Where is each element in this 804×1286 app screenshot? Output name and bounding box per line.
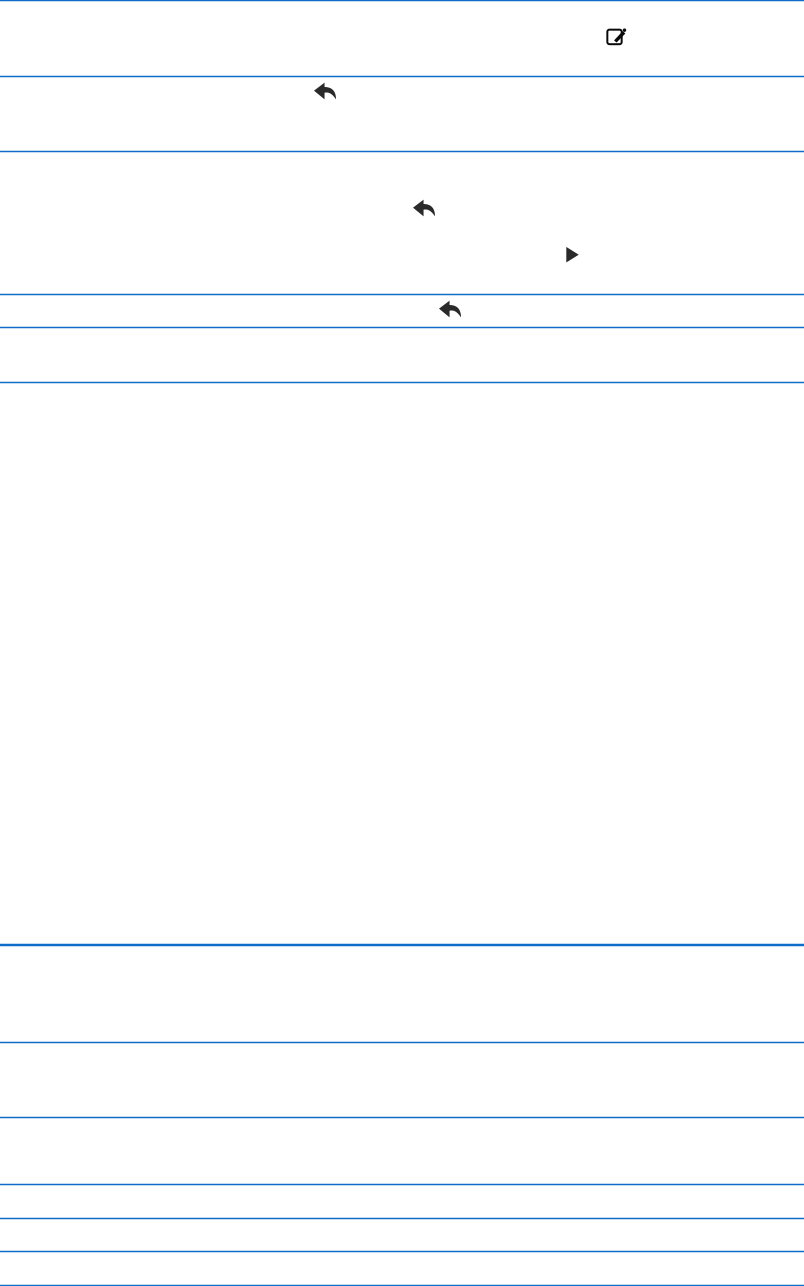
button[interactable]: Reply [307, 73, 343, 109]
button[interactable]: Compose [594, 13, 638, 57]
button[interactable]: Reply [406, 190, 442, 226]
button[interactable]: Reply [432, 291, 468, 327]
button[interactable]: Play [557, 240, 587, 270]
